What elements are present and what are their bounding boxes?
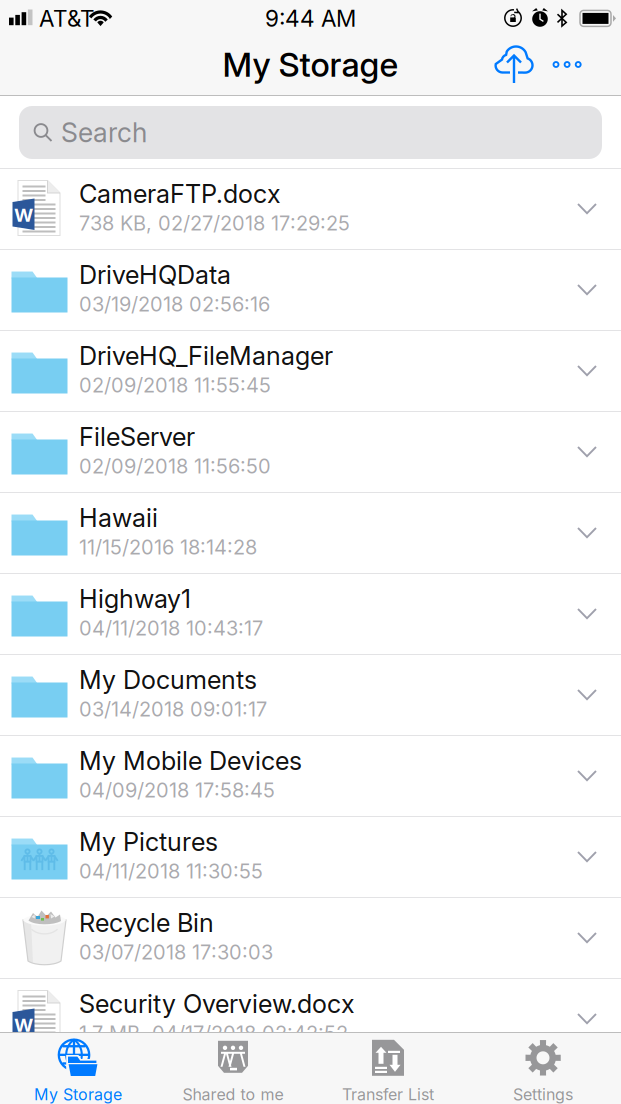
staticText: Transfer List [342, 1085, 434, 1104]
staticText: My Mobile Devices [79, 746, 302, 776]
button[interactable]: Highway1 [0, 574, 621, 655]
staticText: 9:44 AM [265, 5, 356, 32]
staticText: Search [61, 116, 147, 149]
button[interactable]: W [0, 169, 621, 250]
button[interactable]: My Mobile Devices [0, 736, 621, 817]
button[interactable]: FileServer [0, 412, 621, 493]
staticText: Recycle Bin [79, 908, 214, 938]
staticText: My Pictures [79, 827, 218, 857]
staticText: Security Overview.docx [79, 989, 355, 1019]
staticText: 04/11/2018 10:43:17 [79, 616, 263, 640]
staticText: 04/09/2018 17:58:45 [79, 778, 275, 802]
staticText: 03/07/2018 17:30:03 [79, 940, 273, 964]
button[interactable]: Hawaii [0, 493, 621, 574]
staticText: 738 KB, 02/27/2018 17:29:25 [79, 211, 350, 235]
button[interactable]: DriveHQData [0, 250, 621, 331]
button[interactable]: My Pictures [0, 817, 621, 898]
staticText: 04/11/2018 11:30:55 [79, 859, 263, 883]
button[interactable]: W [0, 979, 621, 1060]
button[interactable]: Search [0, 96, 621, 168]
staticText: DriveHQ_FileManager [79, 341, 333, 371]
button[interactable]: Settings [465, 1032, 620, 1104]
staticText: Settings [513, 1085, 573, 1104]
staticText: Shared to me [182, 1085, 283, 1104]
button[interactable]: Transfer List [310, 1032, 465, 1104]
staticText: Hawaii [79, 503, 158, 533]
staticText: 11/15/2016 18:14:28 [79, 535, 257, 559]
staticText: 1.7 MB, 04/17/2018 02:42:52 [79, 1021, 348, 1045]
staticText: FileServer [79, 422, 195, 452]
button[interactable]: Upload [487, 36, 543, 93]
staticText: My Documents [79, 665, 257, 695]
staticText: DriveHQData [79, 260, 231, 290]
staticText: My Storage [222, 44, 398, 85]
staticText: 03/19/2018 02:56:16 [79, 292, 270, 316]
staticText: W [14, 1014, 33, 1036]
staticText: AT&T [39, 5, 94, 32]
button[interactable]: My Documents [0, 655, 621, 736]
staticText: 03/14/2018 09:01:17 [79, 697, 267, 721]
staticText: Highway1 [79, 584, 191, 614]
button[interactable]: Shared to me [155, 1032, 310, 1104]
button[interactable]: Recycle Bin [0, 898, 621, 979]
staticText: W [14, 204, 33, 226]
button[interactable]: DriveHQ_FileManager [0, 331, 621, 412]
staticText: 02/09/2018 11:55:45 [79, 373, 271, 397]
button[interactable]: My Storage [0, 1032, 155, 1104]
staticText: My Storage [34, 1085, 122, 1104]
staticText: 02/09/2018 11:56:50 [79, 454, 271, 478]
button[interactable]: More options [543, 36, 593, 93]
staticText: CameraFTP.docx [79, 179, 281, 209]
